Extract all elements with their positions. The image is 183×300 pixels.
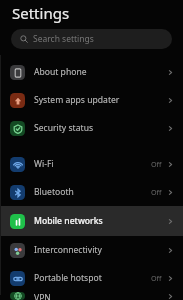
staticText: Security status [34,122,167,134]
button[interactable]: Search settings [11,29,172,49]
staticText: Off [151,159,162,169]
staticText: Off [151,187,162,197]
button[interactable]: VPN [0,292,183,300]
button[interactable]: Interconnectivity [0,236,183,264]
button[interactable]: Wi-Fi [0,150,183,178]
staticText: Bluetooth [34,186,151,198]
staticText: Wi-Fi [34,158,151,170]
staticText: Off [151,273,162,283]
button[interactable]: Portable hotspot [0,264,183,292]
staticText: Mobile networks [34,215,167,227]
staticText: About phone [34,66,167,78]
button[interactable]: About phone [0,58,183,86]
staticText: Search settings [33,33,94,45]
button[interactable]: System apps updater [0,86,183,114]
staticText: Portable hotspot [34,272,151,284]
staticText: Interconnectivity [34,244,167,256]
staticText: Settings [12,3,70,23]
staticText: VPN [34,292,167,300]
button[interactable]: Mobile networks [0,206,183,236]
button[interactable]: Security status [0,114,183,142]
staticText: System apps updater [34,94,167,106]
button[interactable]: Bluetooth [0,178,183,206]
